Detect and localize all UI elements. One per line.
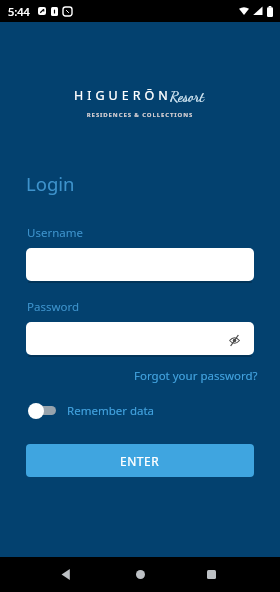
staticText: RESIDENCES & COLLECTIONS [0, 111, 280, 119]
staticText: Remember data [67, 403, 155, 419]
button[interactable]: Forgot your password? [134, 368, 258, 384]
staticText: HIGUERŌN [74, 87, 172, 104]
button[interactable] [50, 558, 83, 591]
staticText: 5:44 [8, 4, 30, 19]
staticText: Username [27, 225, 83, 241]
button[interactable] [195, 558, 228, 591]
button[interactable] [124, 558, 157, 591]
button[interactable]: Remember data [28, 402, 155, 419]
button[interactable]: ENTER [26, 444, 254, 477]
staticText: Password [27, 299, 80, 315]
button[interactable] [26, 322, 254, 355]
staticText: Login [26, 171, 75, 196]
button[interactable] [26, 248, 254, 281]
staticText: Resort [170, 87, 204, 105]
staticText: ENTER [120, 453, 160, 469]
